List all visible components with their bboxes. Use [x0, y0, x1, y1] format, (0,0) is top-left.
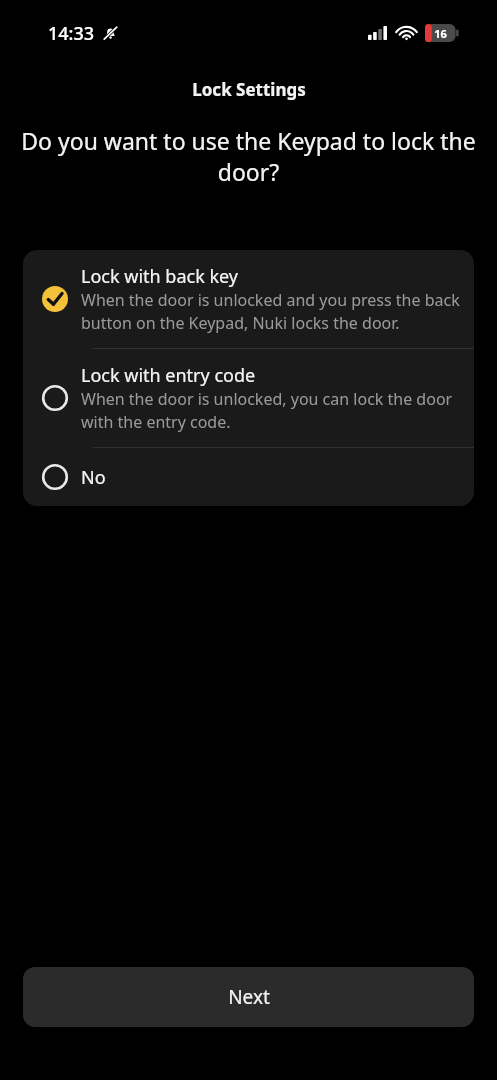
staticText: No — [81, 465, 106, 490]
other: Unselected option — [40, 383, 70, 413]
other: Unselected option — [40, 462, 70, 492]
staticText: When the door is unlocked and you press … — [81, 289, 460, 334]
staticText: 16 — [434, 26, 447, 41]
staticText: Do you want to use the Keypad to lock th… — [20, 125, 477, 188]
staticText: Lock with back key — [81, 264, 239, 289]
staticText: When the door is unlocked, you can lock … — [81, 388, 460, 433]
staticText: 14:33 — [48, 21, 95, 46]
button[interactable]: Next — [23, 967, 474, 1027]
button[interactable]: Selected option — [23, 250, 474, 348]
button[interactable]: Unselected option — [23, 448, 474, 506]
staticText: Next — [228, 984, 270, 1010]
staticText: Lock Settings — [192, 78, 306, 101]
other: Selected option — [40, 284, 70, 314]
button[interactable]: Unselected option — [23, 349, 474, 447]
staticText: Lock with entry code — [81, 363, 256, 388]
